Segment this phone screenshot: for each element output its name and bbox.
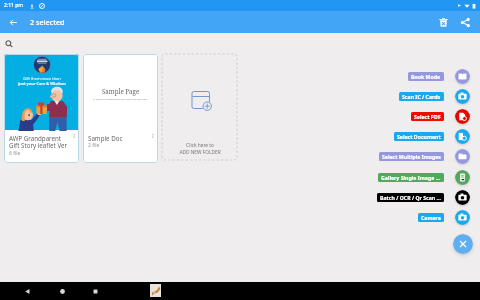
staticText: Sample Doc — [88, 134, 123, 142]
button[interactable]: Search — [3, 38, 14, 49]
staticText: ADD NEW FOLDER — [179, 149, 221, 156]
staticText: Batch / OCR / Qr Scan ... — [380, 194, 441, 201]
button[interactable]: Share — [454, 11, 476, 33]
staticText: Click here to — [186, 142, 214, 149]
button[interactable]: Sample Page — [83, 54, 158, 163]
button[interactable]: Camera — [0, 209, 470, 225]
button[interactable]: Book Mode — [0, 68, 470, 84]
staticText: 2:11 pm — [4, 2, 24, 9]
staticText: 2 file — [88, 142, 100, 149]
staticText: Sample Page — [102, 87, 140, 95]
button[interactable]: More options — [70, 132, 78, 140]
staticText: 2 selected — [30, 17, 65, 27]
button[interactable]: Delete — [432, 11, 454, 33]
button[interactable]: Gift them more than — [4, 54, 79, 163]
button[interactable]: More options — [149, 132, 157, 140]
button[interactable]: App shortcut — [150, 284, 161, 297]
button[interactable]: Select Document — [0, 128, 470, 144]
button[interactable]: Select PDF — [0, 108, 470, 124]
staticText: Select Document — [397, 133, 441, 140]
button[interactable]: Recents — [89, 282, 102, 300]
staticText: 6 file — [9, 150, 21, 157]
button[interactable]: Close menu — [453, 234, 473, 254]
staticText: Select PDF — [414, 113, 441, 120]
staticText: just your Care & Wisdom — [18, 81, 66, 86]
staticText: AWP Grandparent Gift Story leaflet Ver — [9, 134, 71, 150]
button[interactable]: Select Multiple Images — [0, 148, 470, 164]
staticText: Select Multiple Images — [382, 153, 441, 160]
button[interactable]: Back — [0, 11, 27, 33]
staticText: Gallery Single Image ... — [381, 174, 441, 181]
button[interactable]: Click here to — [162, 54, 237, 160]
staticText: Scan IC / Cards — [402, 93, 441, 100]
staticText: Gift them more than — [23, 76, 61, 81]
button[interactable]: Scan IC / Cards — [0, 88, 470, 104]
button[interactable]: Back — [21, 282, 34, 300]
button[interactable]: Home — [56, 282, 69, 300]
button[interactable]: Batch / OCR / Qr Scan ... — [0, 189, 470, 205]
button[interactable]: Gallery Single Image ... — [0, 169, 470, 185]
staticText: Camera — [421, 214, 441, 221]
staticText: Book Mode — [411, 73, 441, 80]
staticText: In which a grandparent shares more than … — [93, 98, 148, 101]
